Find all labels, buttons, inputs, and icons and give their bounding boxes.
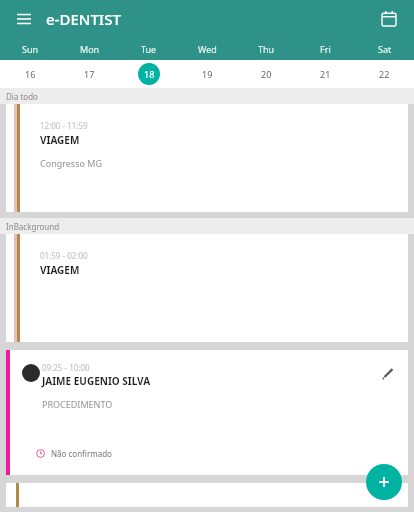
button[interactable]: 09:25 - 10:00 <box>6 350 408 475</box>
button[interactable]: 22 <box>355 60 414 88</box>
button[interactable]: 16 <box>0 60 60 88</box>
staticText: 17 <box>84 68 95 80</box>
button[interactable]: Fri <box>296 38 355 60</box>
staticText: 19 <box>202 68 213 80</box>
staticText: 18 <box>144 68 155 80</box>
staticText: 22 <box>379 68 390 80</box>
staticText: Mon <box>80 43 100 55</box>
staticText: Fri <box>320 43 331 55</box>
staticText: 16 <box>25 68 36 80</box>
button[interactable]: Tue <box>119 38 178 60</box>
button[interactable]: 01:59 - 02:00 <box>6 234 408 342</box>
button[interactable]: Sat <box>355 38 414 60</box>
staticText: InBackground <box>6 221 60 232</box>
button[interactable]: Thu <box>237 38 296 60</box>
button[interactable]: 20 <box>237 60 296 88</box>
button[interactable]: Edit appointment <box>376 362 400 386</box>
staticText: Não confirmado <box>51 448 112 459</box>
staticText: Wed <box>198 43 217 55</box>
staticText: e-DENTIST <box>46 9 121 29</box>
staticText: 21 <box>320 68 331 80</box>
staticText: PROCEDIMENTO <box>42 398 113 410</box>
staticText: VIAGEM <box>40 133 80 147</box>
button[interactable]: Sun <box>0 38 60 60</box>
staticText: Dia todo <box>6 91 38 102</box>
staticText: Tue <box>141 43 157 55</box>
staticText: Congresso MG <box>40 157 102 169</box>
button[interactable] <box>6 483 408 507</box>
staticText: Sat <box>378 43 392 55</box>
staticText: JAIME EUGENIO SILVA <box>42 374 151 388</box>
button[interactable]: 12:00 - 11:59 <box>6 104 408 212</box>
button[interactable]: Não confirmado <box>36 448 112 459</box>
staticText: 01:59 - 02:00 <box>40 250 88 261</box>
staticText: 20 <box>261 68 272 80</box>
button[interactable]: Add appointment <box>366 464 402 500</box>
button[interactable]: 17 <box>60 60 119 88</box>
staticText: Thu <box>258 43 275 55</box>
staticText: 09:25 - 10:00 <box>42 362 90 373</box>
staticText: VIAGEM <box>40 263 80 277</box>
button[interactable]: 21 <box>296 60 355 88</box>
button[interactable]: Calendar <box>374 4 404 34</box>
button[interactable]: Open navigation menu <box>8 3 40 35</box>
button[interactable]: Wed <box>178 38 237 60</box>
staticText: 12:00 - 11:59 <box>40 120 88 131</box>
button[interactable]: 18 <box>119 60 178 88</box>
staticText: Sun <box>22 43 39 55</box>
button[interactable]: Mon <box>60 38 119 60</box>
button[interactable]: 19 <box>178 60 237 88</box>
